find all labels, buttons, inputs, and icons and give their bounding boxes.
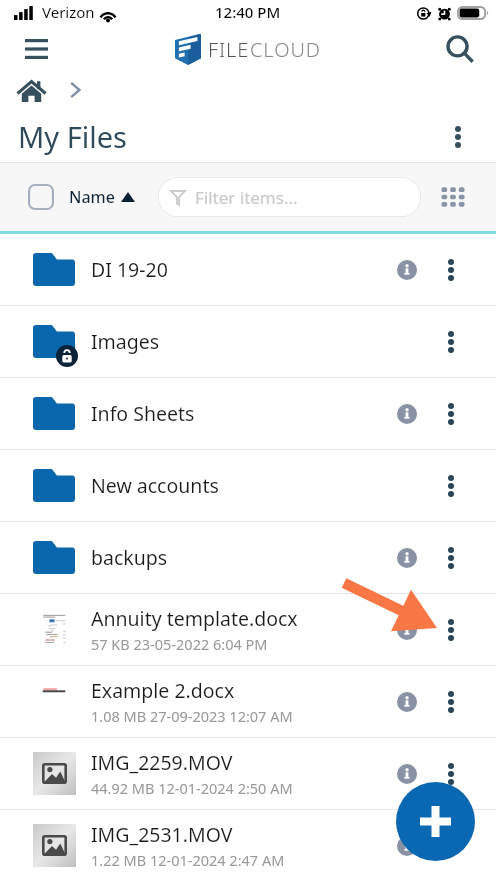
staticText: My Files <box>18 117 127 156</box>
button[interactable]: Info <box>390 829 424 863</box>
button[interactable]: More options <box>433 468 469 504</box>
button[interactable]: Info <box>390 397 424 431</box>
staticText: Filter items... <box>195 186 298 209</box>
button[interactable]: More options <box>433 756 469 792</box>
staticText: Annuity template.docx <box>91 605 298 632</box>
staticText: 57 KB 23-05-2022 6:04 PM <box>91 634 268 654</box>
staticText: CLOUD <box>250 36 321 63</box>
button[interactable]: More options <box>433 828 469 864</box>
staticText: 1.22 MB 12-01-2024 2:47 AM <box>91 850 285 870</box>
button[interactable]: Annuity template.docx <box>0 594 496 665</box>
button[interactable]: Grid view <box>433 177 473 217</box>
staticText: backups <box>91 544 168 571</box>
staticText: 1.08 MB 27-09-2023 12:07 AM <box>91 706 293 726</box>
button[interactable]: Search <box>438 27 482 71</box>
button[interactable]: Info <box>390 685 424 719</box>
button[interactable]: Home <box>12 72 50 110</box>
button[interactable]: Info <box>390 541 424 575</box>
button[interactable]: Images <box>0 306 496 377</box>
staticText: DI 19-20 <box>91 256 168 283</box>
button[interactable]: More options <box>438 117 478 157</box>
staticText: Info Sheets <box>91 400 195 427</box>
button[interactable]: More options <box>433 540 469 576</box>
button[interactable]: More options <box>433 684 469 720</box>
button[interactable]: Add <box>396 782 475 861</box>
button[interactable]: More options <box>433 612 469 648</box>
button[interactable]: backups <box>0 522 496 593</box>
staticText: New accounts <box>91 472 219 499</box>
button[interactable]: Example 2.docx <box>0 666 496 737</box>
staticText: Example 2.docx <box>91 677 235 704</box>
button[interactable]: Name <box>28 184 135 210</box>
staticText: Images <box>91 328 160 355</box>
button[interactable]: DI 19-20 <box>0 234 496 305</box>
button[interactable]: Breadcrumb separator <box>70 82 80 98</box>
button[interactable]: Info <box>390 253 424 287</box>
staticText: IMG_2259.MOV <box>91 749 233 776</box>
button[interactable]: IMG_2259.MOV <box>0 738 496 809</box>
button[interactable]: Menu <box>14 27 58 71</box>
staticText: Name <box>69 186 115 208</box>
button[interactable]: Info Sheets <box>0 378 496 449</box>
button[interactable]: More options <box>433 324 469 360</box>
staticText: FILE <box>208 36 250 63</box>
button[interactable]: Filter items... <box>158 177 421 217</box>
button[interactable]: More options <box>433 252 469 288</box>
button[interactable]: Info <box>390 757 424 791</box>
staticText: 44.92 MB 12-01-2024 2:50 AM <box>91 778 293 798</box>
button[interactable]: Info <box>390 613 424 647</box>
staticText: 12:40 PM <box>215 2 281 22</box>
button[interactable]: More options <box>433 396 469 432</box>
button[interactable]: New accounts <box>0 450 496 521</box>
staticText: IMG_2531.MOV <box>91 821 233 848</box>
staticText: Verizon <box>42 2 95 22</box>
button[interactable]: IMG_2531.MOV <box>0 810 496 881</box>
